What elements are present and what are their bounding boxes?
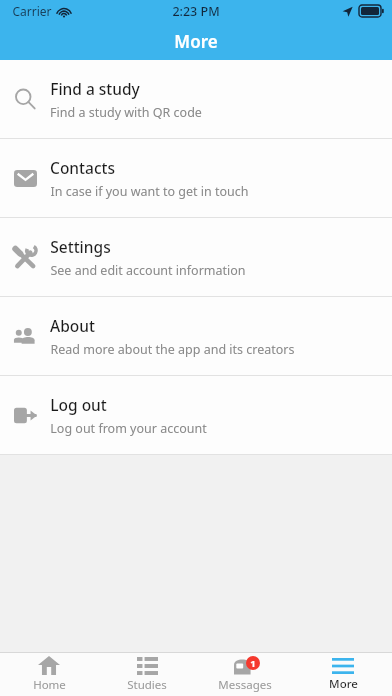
staticText: Contacts — [50, 157, 115, 178]
button[interactable]: More — [294, 653, 392, 696]
button[interactable]: Studies — [98, 653, 196, 696]
other: Settings — [13, 245, 37, 269]
staticText: Home — [33, 677, 66, 693]
staticText: Studies — [127, 677, 167, 693]
button[interactable]: Settings — [0, 218, 392, 296]
staticText: Settings — [50, 236, 111, 257]
button[interactable]: Log out — [0, 376, 392, 454]
other: About — [13, 324, 37, 348]
staticText: 2:23 PM — [172, 3, 220, 20]
staticText: More — [174, 30, 218, 53]
staticText: See and edit account information — [50, 262, 246, 279]
staticText: Carrier — [12, 3, 52, 19]
button[interactable]: Find a study — [0, 60, 392, 138]
staticText: Log out from your account — [50, 420, 207, 437]
staticText: More — [329, 676, 358, 692]
other: Contacts — [14, 167, 37, 190]
staticText: 1 — [250, 657, 256, 670]
staticText: Messages — [218, 677, 272, 693]
staticText: Find a study with QR code — [50, 104, 202, 121]
other: Find a study — [14, 88, 36, 110]
staticText: Read more about the app and its creators — [50, 341, 295, 358]
button[interactable]: About — [0, 297, 392, 375]
button[interactable]: Home — [0, 653, 98, 696]
staticText: About — [50, 315, 95, 336]
other: Log out — [14, 404, 37, 427]
staticText: In case if you want to get in touch — [50, 183, 249, 200]
button[interactable]: Contacts — [0, 139, 392, 217]
button[interactable]: 1 — [196, 653, 294, 696]
staticText: Log out — [50, 394, 107, 415]
staticText: Find a study — [50, 78, 140, 99]
